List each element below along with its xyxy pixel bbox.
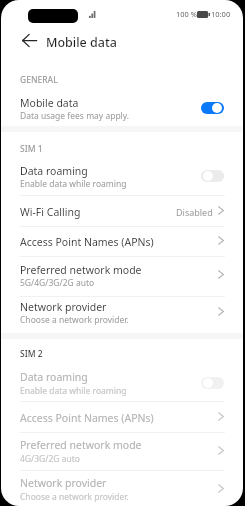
- button[interactable]: Toggle: [201, 377, 224, 389]
- staticText: 4G/3G/2G auto: [20, 453, 80, 465]
- staticText: Enable data while roaming: [20, 385, 127, 397]
- button[interactable]: Wi-Fi Calling: [1, 196, 242, 226]
- staticText: Mobile data: [46, 34, 117, 51]
- button[interactable]: Mobile data: [1, 88, 242, 126]
- staticText: Enable data while roaming: [20, 178, 127, 190]
- button[interactable]: Toggle: [201, 102, 224, 114]
- button[interactable]: Preferred network mode: [1, 257, 242, 296]
- button[interactable]: Network provider: [1, 297, 242, 332]
- staticText: 10:00: [211, 9, 231, 19]
- staticText: Choose a network provider.: [20, 491, 129, 503]
- staticText: GENERAL: [20, 74, 58, 86]
- staticText: 5G/4G/3G/2G auto: [20, 277, 95, 289]
- staticText: Wi-Fi Calling: [20, 205, 81, 219]
- staticText: SIM 2: [20, 348, 43, 360]
- staticText: Mobile data: [20, 96, 79, 110]
- button[interactable]: Back: [13, 25, 43, 55]
- button[interactable]: Preferred network mode: [1, 433, 242, 470]
- staticText: Preferred network mode: [20, 263, 142, 277]
- button[interactable]: Toggle: [201, 170, 224, 182]
- staticText: Data roaming: [20, 164, 88, 178]
- button[interactable]: Data roaming: [1, 339, 242, 401]
- button[interactable]: Access Point Names (APNs): [1, 402, 242, 432]
- button[interactable]: Network provider: [1, 471, 242, 506]
- staticText: Preferred network mode: [20, 438, 142, 452]
- staticText: Network provider: [20, 300, 107, 314]
- staticText: Network provider: [20, 476, 107, 490]
- button[interactable]: Data roaming: [1, 132, 242, 195]
- staticText: Data usage fees may apply.: [20, 110, 130, 122]
- staticText: Access Point Names (APNs): [20, 235, 154, 249]
- staticText: Data roaming: [20, 370, 88, 384]
- button[interactable]: Access Point Names (APNs): [1, 227, 242, 256]
- staticText: 100 %: [176, 9, 198, 19]
- staticText: Access Point Names (APNs): [20, 411, 154, 425]
- staticText: Choose a network provider.: [20, 314, 129, 326]
- staticText: Disabled: [176, 206, 213, 218]
- staticText: SIM 1: [20, 143, 43, 155]
